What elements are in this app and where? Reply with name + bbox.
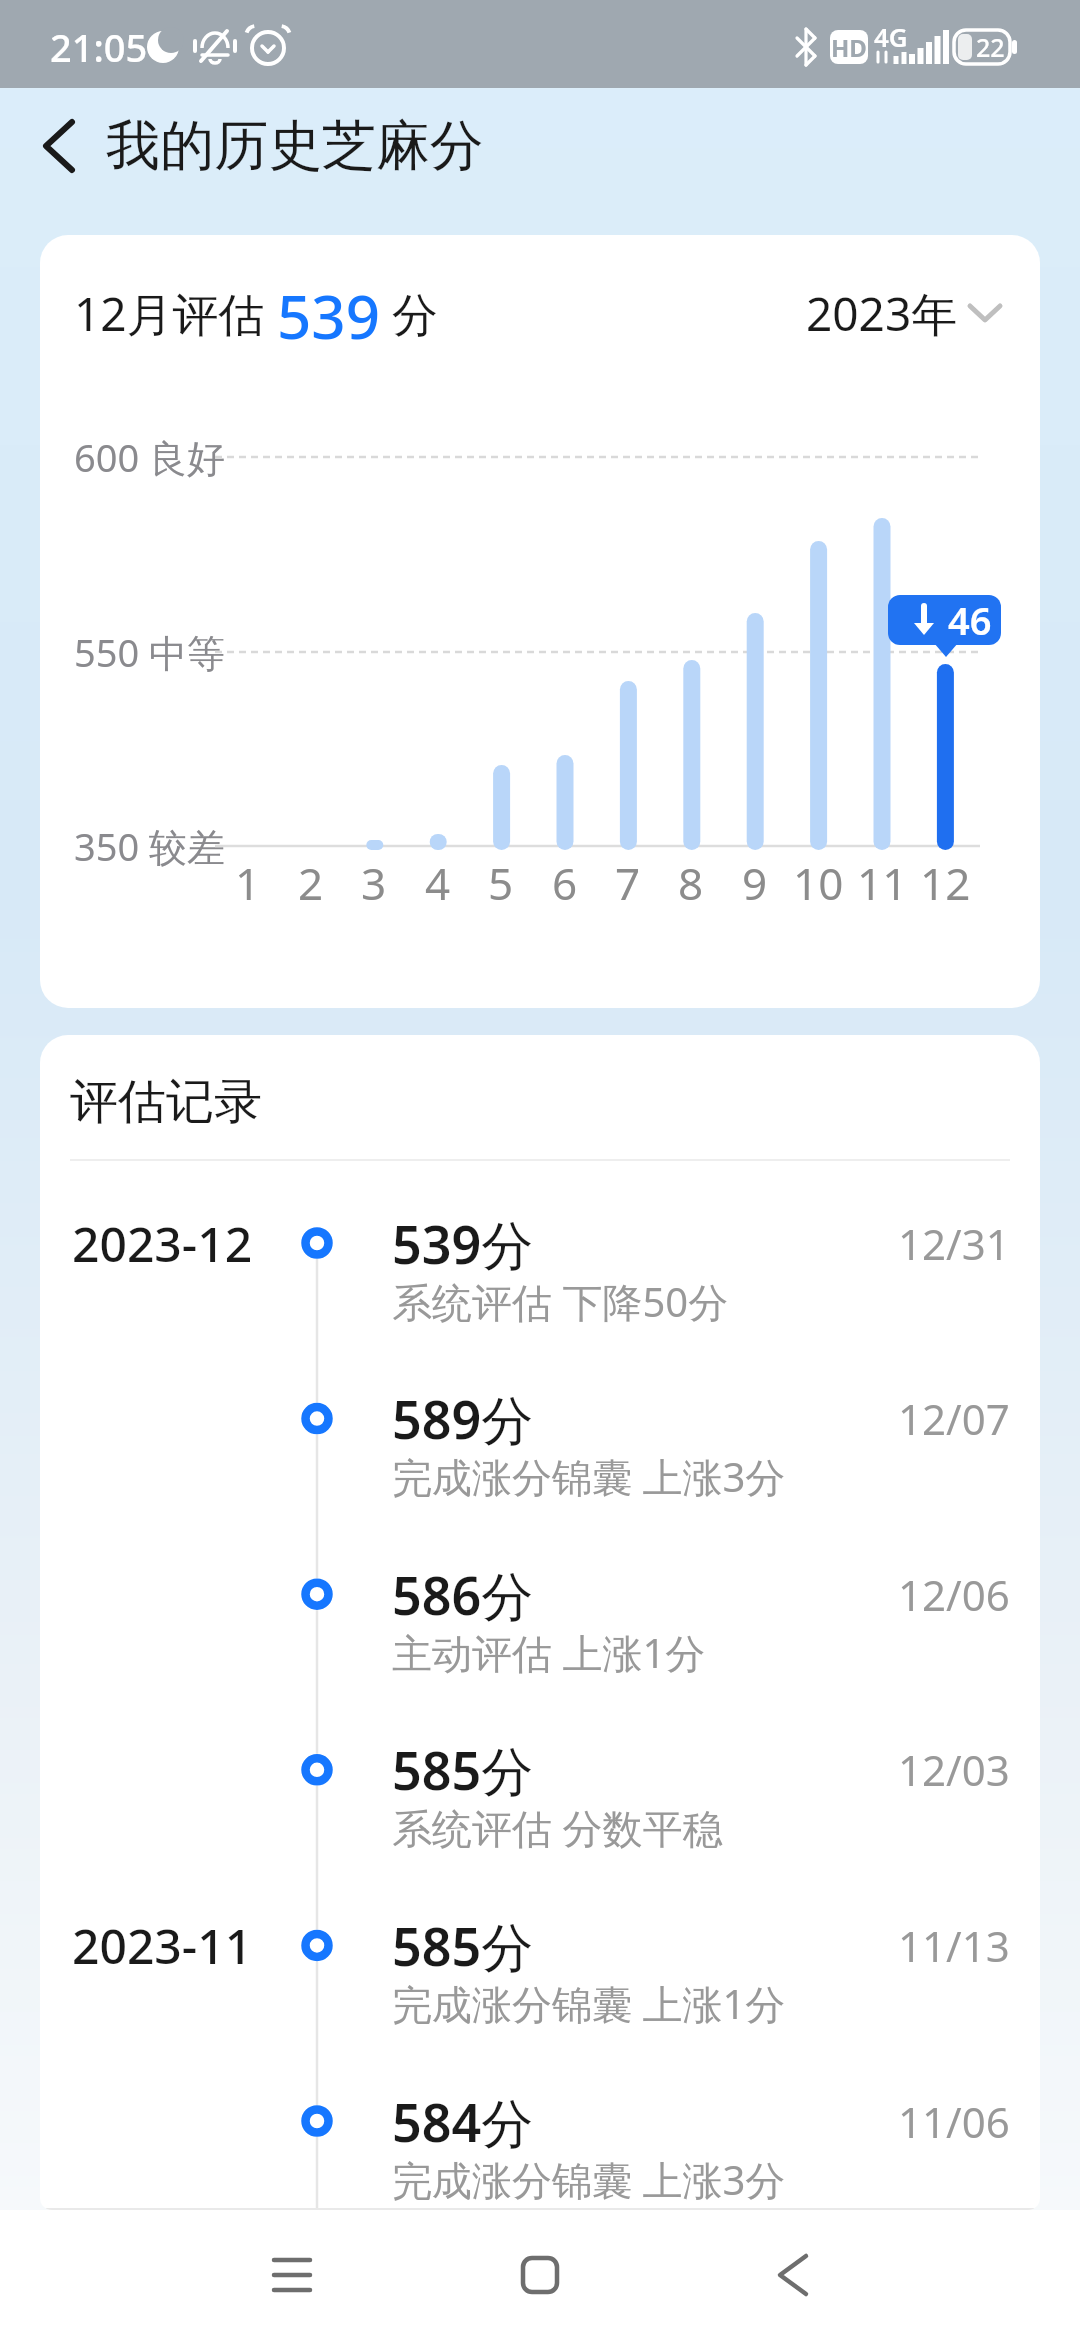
staticText: 4G	[874, 19, 908, 54]
button[interactable]	[40, 1534, 1040, 1684]
staticText: 3	[361, 853, 387, 913]
staticText: 我的历史芝麻分	[106, 112, 484, 180]
staticText: 12/06	[898, 1566, 1010, 1623]
staticText: 评估记录	[70, 1072, 262, 1132]
button[interactable]	[743, 2225, 843, 2325]
staticText: 11/13	[898, 1917, 1010, 1974]
button[interactable]: 2023年	[740, 275, 1002, 351]
staticText: 589分	[392, 1383, 534, 1454]
button[interactable]	[490, 2225, 590, 2325]
button[interactable]	[40, 1709, 1040, 1859]
staticText: 2023-11	[72, 1913, 253, 1978]
staticText: 主动评估 上涨1分	[392, 1625, 706, 1680]
staticText: 12	[920, 853, 971, 913]
staticText: 585分	[392, 1734, 534, 1805]
staticText: 22	[976, 30, 1005, 64]
button[interactable]	[20, 106, 100, 186]
staticText: 11	[857, 853, 908, 913]
staticText: 完成涨分锦囊 上涨1分	[392, 1976, 786, 2031]
staticText: 12/03	[898, 1741, 1010, 1798]
staticText: 8	[678, 853, 704, 913]
staticText: 系统评估 分数平稳	[392, 1800, 723, 1855]
staticText: 2023-12	[72, 1211, 253, 1276]
staticText: HD	[831, 31, 867, 64]
staticText: 5	[488, 853, 514, 913]
staticText: 10	[793, 853, 844, 913]
staticText: 584分	[392, 2086, 534, 2157]
staticText: 586分	[392, 1559, 534, 1630]
staticText: 7	[615, 853, 641, 913]
staticText: 350 较差	[74, 820, 226, 872]
button[interactable]	[40, 2061, 1040, 2210]
button[interactable]	[40, 1183, 1040, 1333]
staticText: 1	[235, 853, 261, 913]
staticText: 12月评估	[74, 282, 277, 345]
staticText: 4	[425, 853, 451, 913]
staticText: 12/07	[898, 1390, 1010, 1447]
staticText: 9	[742, 853, 768, 913]
staticText: 46	[948, 594, 992, 646]
staticText: 600 良好	[74, 431, 226, 483]
staticText: 2	[298, 853, 324, 913]
staticText: 分	[380, 282, 438, 345]
staticText: 11/06	[898, 2093, 1010, 2150]
staticText: 550 中等	[74, 626, 226, 678]
button[interactable]	[242, 2225, 342, 2325]
staticText: 12/31	[898, 1215, 1010, 1272]
staticText: 完成涨分锦囊 上涨3分	[392, 2152, 786, 2207]
staticText: 2023年	[806, 282, 958, 345]
staticText: 539分	[392, 1208, 534, 1279]
staticText: 21:05	[50, 21, 148, 73]
staticText: 585分	[392, 1910, 534, 1981]
staticText: 6	[552, 853, 578, 913]
staticText: 系统评估 下降50分	[392, 1274, 729, 1329]
staticText: 完成涨分锦囊 上涨3分	[392, 1449, 786, 1504]
button[interactable]	[40, 1358, 1040, 1508]
staticText: 539	[277, 275, 380, 351]
button[interactable]	[40, 1885, 1040, 2035]
